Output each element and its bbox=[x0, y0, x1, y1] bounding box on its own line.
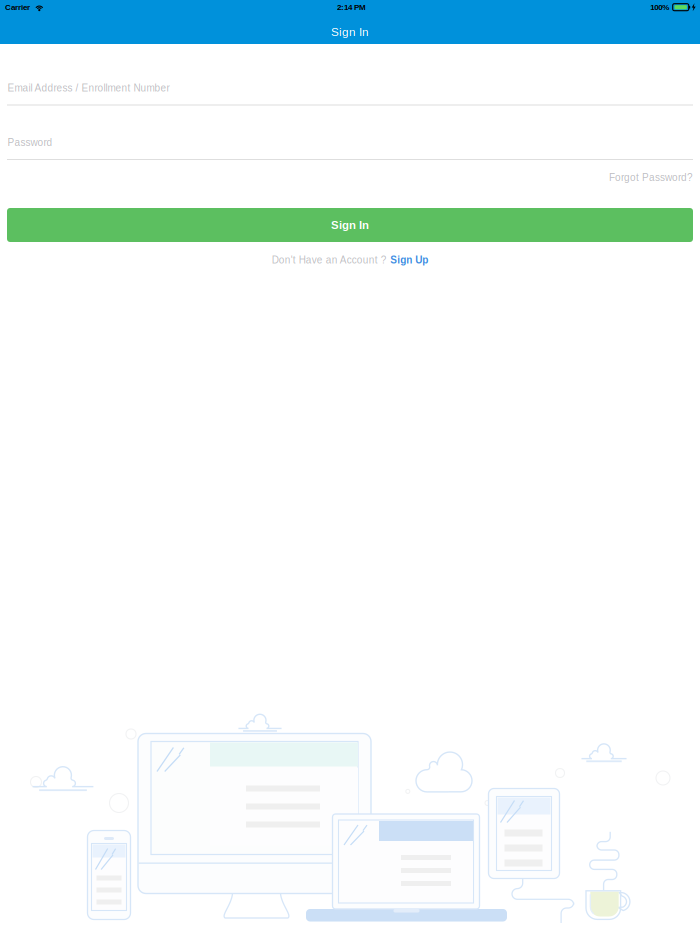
staticText: Password bbox=[7, 137, 52, 148]
staticText: Forgot Password? bbox=[609, 172, 693, 183]
staticText: Email Address / Enrollment Number bbox=[7, 82, 169, 94]
staticText: 100% bbox=[650, 3, 669, 12]
button[interactable]: Forgot Password? bbox=[573, 168, 693, 186]
staticText: Carrier bbox=[5, 3, 30, 12]
staticText: Don't Have an Account ? bbox=[272, 254, 387, 266]
staticText: Sign In bbox=[331, 219, 369, 231]
staticText: 2:14 PM bbox=[337, 3, 366, 12]
staticText: Sign Up bbox=[390, 254, 428, 266]
button[interactable]: Sign In bbox=[7, 208, 693, 242]
staticText: Sign In bbox=[331, 25, 369, 39]
button[interactable]: Sign Up bbox=[390, 254, 428, 266]
